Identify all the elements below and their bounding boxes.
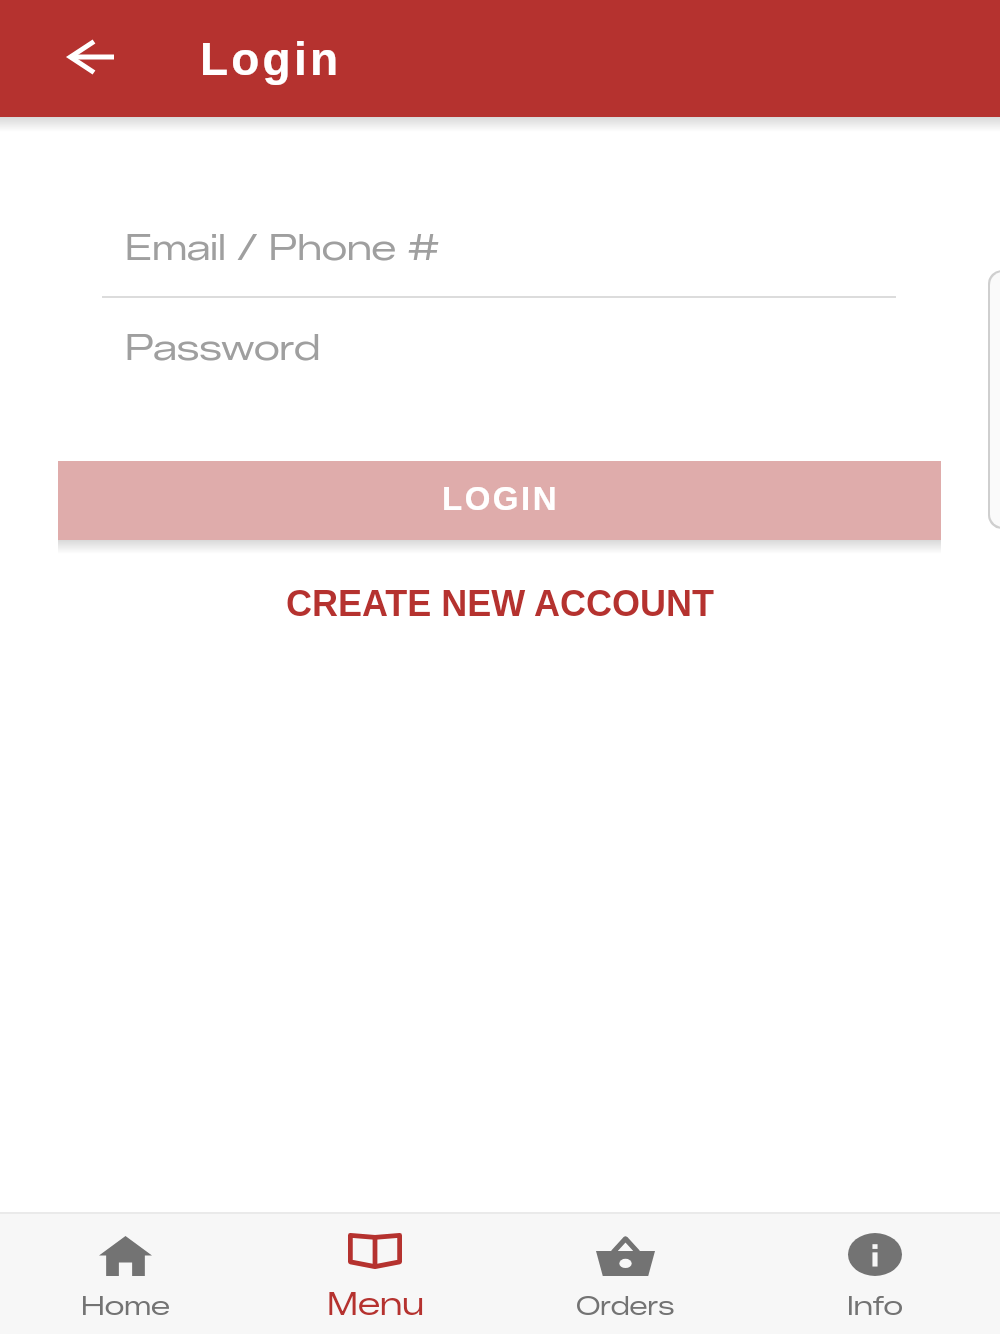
button[interactable]: Home xyxy=(0,1214,250,1254)
button[interactable]: Password xyxy=(102,299,896,401)
button[interactable]: LOGIN xyxy=(58,461,941,540)
staticText: Home xyxy=(81,1289,170,1322)
staticText: CREATE NEW ACCOUNT xyxy=(286,583,714,623)
button[interactable]: Info xyxy=(750,1214,1000,1257)
button[interactable]: CREATE NEW ACCOUNT xyxy=(0,567,1000,639)
button[interactable]: Back xyxy=(50,20,131,94)
staticText: Email / Phone # xyxy=(125,226,441,268)
button[interactable]: Email / Phone # xyxy=(102,199,896,301)
staticText: Orders xyxy=(576,1290,675,1321)
staticText: Login xyxy=(200,33,342,84)
button[interactable]: Orders xyxy=(500,1214,750,1254)
staticText: LOGIN xyxy=(442,480,559,517)
button[interactable]: Menu xyxy=(250,1214,500,1252)
staticText: Info xyxy=(847,1289,904,1322)
staticText: Menu xyxy=(327,1285,424,1323)
staticText: Password xyxy=(125,326,321,369)
